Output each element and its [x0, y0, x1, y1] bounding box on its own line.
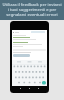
- button[interactable]: [12, 60, 47, 86]
- button[interactable]: Utilizza il feedback per inviarci i tuoi…: [0, 0, 64, 20]
- other: Anteprima dell'app: [10, 21, 49, 93]
- staticText: Utilizza il feedback per inviarci i tuoi…: [0, 2, 64, 17]
- button[interactable]: [13, 54, 30, 57]
